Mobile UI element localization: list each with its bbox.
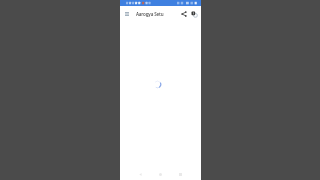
- button[interactable]: Back: [136, 170, 145, 179]
- button[interactable]: Navigation menu: [122, 9, 132, 19]
- button[interactable]: Home: [156, 170, 165, 179]
- staticText: Aarogya Setu: [136, 11, 164, 17]
- button[interactable]: Share: [179, 9, 189, 19]
- button[interactable]: Open chat bot: [189, 9, 199, 19]
- button[interactable]: Recents: [176, 170, 185, 179]
